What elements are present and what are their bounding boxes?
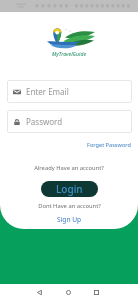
button[interactable]: Recents <box>86 284 106 300</box>
staticText: Already Have an account? <box>34 164 104 172</box>
staticText: Dont Have an account? <box>38 202 101 210</box>
staticText: Forget Password <box>87 141 131 149</box>
staticText: Sign Up <box>57 215 82 224</box>
staticText: MyTravelGuide <box>52 51 87 58</box>
staticText: Enter Email <box>26 86 69 97</box>
button[interactable]: Sign Up <box>51 214 88 225</box>
staticText: Password <box>26 116 63 127</box>
button[interactable]: Back <box>29 284 49 300</box>
button[interactable]: Password <box>7 110 132 133</box>
button[interactable]: Home <box>58 284 78 300</box>
button[interactable]: Enter Email <box>7 80 132 103</box>
staticText: Login <box>56 182 83 196</box>
button[interactable]: Forget Password <box>80 140 138 150</box>
button[interactable]: Login <box>41 181 98 197</box>
